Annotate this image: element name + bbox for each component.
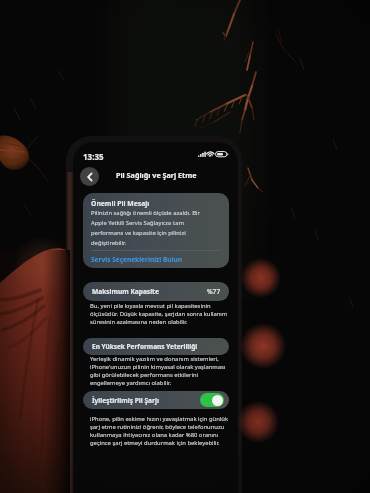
staticText: iPhone, pilin eskime hızını yavaşlatmak … bbox=[90, 415, 230, 447]
staticText: Yerleşik dinamik yazılım ve donanım sist… bbox=[90, 355, 230, 387]
staticText: En Yüksek Performans Yeterliliği bbox=[92, 342, 198, 351]
staticText: Önemli Pil Mesajı bbox=[91, 199, 150, 208]
button[interactable]: İyileştirilmiş Pil Şarjı bbox=[83, 391, 229, 409]
button[interactable]: Back bbox=[80, 167, 99, 186]
staticText: Pilinizin sağlığı önemli ölçüde azaldı. … bbox=[91, 209, 215, 247]
staticText: %77 bbox=[207, 287, 221, 296]
button[interactable]: En Yüksek Performans Yeterliliği bbox=[83, 338, 229, 355]
button[interactable]: Maksimum Kapasite bbox=[83, 282, 229, 301]
staticText: Pil Sağlığı ve Şarj Etme bbox=[116, 170, 197, 180]
button[interactable]: Optimized battery charging toggle bbox=[200, 393, 224, 407]
staticText: Servis Seçeneklerinizi Bulun bbox=[91, 255, 183, 264]
staticText: 13:35 bbox=[83, 151, 104, 162]
button[interactable]: Önemli Pil Mesajı bbox=[83, 193, 229, 268]
staticText: İyileştirilmiş Pil Şarjı bbox=[92, 396, 159, 405]
staticText: Bu, yeni pile kıyasla mevcut pil kapasit… bbox=[90, 302, 230, 326]
staticText: Maksimum Kapasite bbox=[92, 287, 159, 296]
